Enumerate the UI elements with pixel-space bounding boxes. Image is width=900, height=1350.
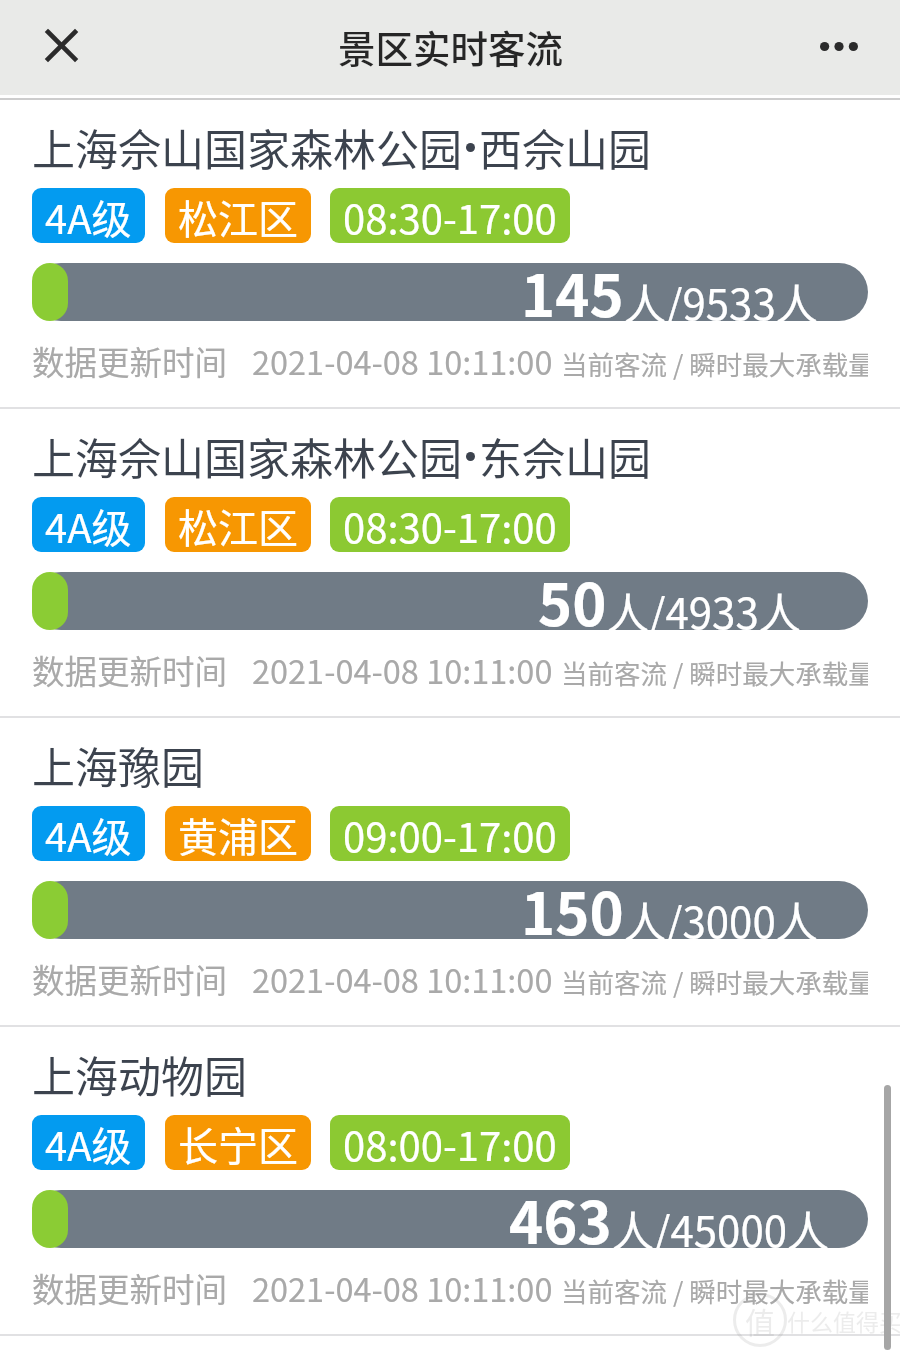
staticText: 2021-04-08 10:11:00 [252,955,553,1002]
staticText: 上海动物园 [32,1043,247,1105]
staticText: 08:30-17:00 [343,497,557,552]
staticText: 08:30-17:00 [343,188,557,243]
staticText: 人/3000人 [624,889,818,950]
staticText: 当前客流 / 瞬时最大承载量 [561,962,868,1000]
staticText: 4A级 [45,188,132,243]
button[interactable]: 上海佘山国家森林公园 [0,409,900,716]
staticText: 数据更新时间 [32,955,228,1002]
staticText: 西佘山园 [479,116,651,178]
staticText: 什么值得买 [787,1304,900,1337]
button[interactable]: 上海佘山国家森林公园 [0,100,900,407]
staticText: 人/45000人 [612,1198,830,1259]
staticText: 值 [745,1299,775,1342]
staticText: 上海豫园 [32,734,204,796]
staticText: 松江区 [178,188,298,243]
staticText: 50 [538,559,607,643]
staticText: 08:00-17:00 [343,1115,557,1170]
staticText: 东佘山园 [479,425,651,487]
staticText: 黄浦区 [178,806,298,861]
staticText: 09:00-17:00 [343,806,557,861]
staticText: 松江区 [178,497,298,552]
staticText: 上海佘山国家森林公园 [32,425,462,487]
staticText: 4A级 [45,497,132,552]
staticText: 景区实时客流 [338,19,563,73]
staticText: 当前客流 / 瞬时最大承载量 [561,653,868,691]
staticText: 145 [521,250,624,334]
button[interactable]: 上海动物园 [0,1027,900,1334]
staticText: 4A级 [45,1115,132,1170]
staticText: 上海佘山国家森林公园 [32,116,462,178]
staticText: 数据更新时间 [32,1264,228,1311]
staticText: 当前客流 / 瞬时最大承载量 [561,344,868,382]
staticText: 数据更新时间 [32,337,228,384]
staticText: 150 [521,868,624,952]
button[interactable]: 上海豫园 [0,718,900,1025]
staticText: 人/9533人 [624,271,818,332]
button[interactable]: Close [28,12,94,78]
staticText: 数据更新时间 [32,646,228,693]
staticText: 463 [509,1177,612,1261]
staticText: 长宁区 [178,1115,298,1170]
staticText: 2021-04-08 10:11:00 [252,337,553,384]
button[interactable]: More options [806,13,872,79]
staticText: 人/4933人 [607,580,801,641]
staticText: 4A级 [45,806,132,861]
staticText: 2021-04-08 10:11:00 [252,1264,553,1311]
staticText: 当前客流 / 瞬时最大承载量 [561,1271,868,1309]
staticText: 2021-04-08 10:11:00 [252,646,553,693]
